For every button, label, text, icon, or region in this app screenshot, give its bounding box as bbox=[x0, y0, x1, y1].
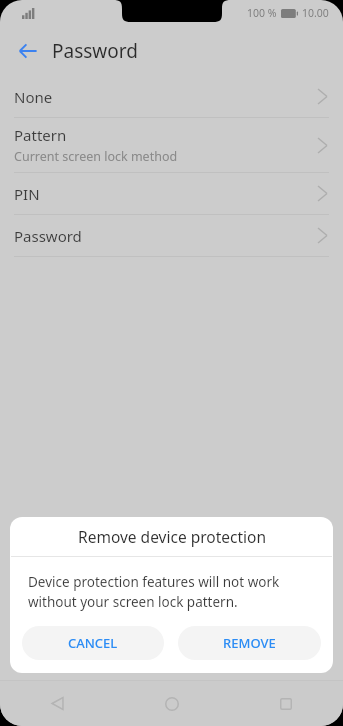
staticText: Current screen lock method bbox=[14, 148, 178, 165]
button[interactable]: Back bbox=[0, 681, 115, 726]
button[interactable]: REMOVE bbox=[178, 626, 321, 660]
staticText: Device protection features will not work… bbox=[28, 573, 315, 611]
button[interactable]: Back bbox=[8, 31, 48, 71]
button[interactable]: PIN bbox=[0, 173, 343, 214]
staticText: CANCEL bbox=[68, 634, 118, 652]
button[interactable]: Recent apps bbox=[229, 681, 343, 726]
staticText: Password bbox=[14, 226, 82, 246]
button[interactable]: CANCEL bbox=[22, 626, 164, 660]
staticText: 100 % bbox=[247, 6, 277, 20]
staticText: Password bbox=[52, 38, 138, 64]
staticText: None bbox=[14, 87, 53, 107]
button[interactable]: Password bbox=[0, 215, 343, 256]
button[interactable]: Pattern bbox=[0, 118, 343, 172]
button[interactable]: None bbox=[0, 76, 343, 117]
staticText: Remove device protection bbox=[78, 526, 266, 547]
staticText: PIN bbox=[14, 184, 40, 204]
staticText: Pattern bbox=[14, 125, 67, 145]
staticText: 10.00 bbox=[302, 6, 329, 20]
staticText: REMOVE bbox=[223, 634, 276, 652]
